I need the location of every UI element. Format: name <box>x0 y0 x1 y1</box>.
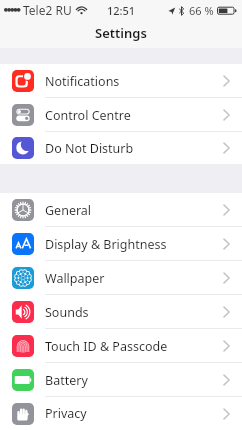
staticText: Wallpaper <box>45 270 105 287</box>
button[interactable]: Battery <box>0 363 242 397</box>
staticText: Privacy <box>45 405 87 422</box>
staticText: Display & Brightness <box>45 236 167 253</box>
staticText: Tele2 RU <box>23 2 72 18</box>
button[interactable]: General <box>0 193 242 227</box>
staticText: 66 % <box>189 3 214 18</box>
button[interactable]: Wallpaper <box>0 261 242 295</box>
staticText: Touch ID & Passcode <box>45 338 168 355</box>
staticText: Notifications <box>45 73 120 90</box>
staticText: Battery <box>45 372 88 389</box>
button[interactable]: Display & Brightness <box>0 227 242 261</box>
button[interactable]: Privacy <box>0 397 242 430</box>
staticText: 12:51 <box>107 3 136 18</box>
staticText: General <box>45 202 92 219</box>
staticText: Sounds <box>45 304 89 321</box>
staticText: Control Centre <box>45 107 131 124</box>
button[interactable]: Notifications <box>0 64 242 98</box>
button[interactable]: Sounds <box>0 295 242 329</box>
button[interactable]: Touch ID & Passcode <box>0 329 242 363</box>
staticText: Settings <box>95 24 147 42</box>
staticText: Do Not Disturb <box>45 140 134 157</box>
button[interactable]: Do Not Disturb <box>0 132 242 164</box>
button[interactable]: Control Centre <box>0 98 242 132</box>
